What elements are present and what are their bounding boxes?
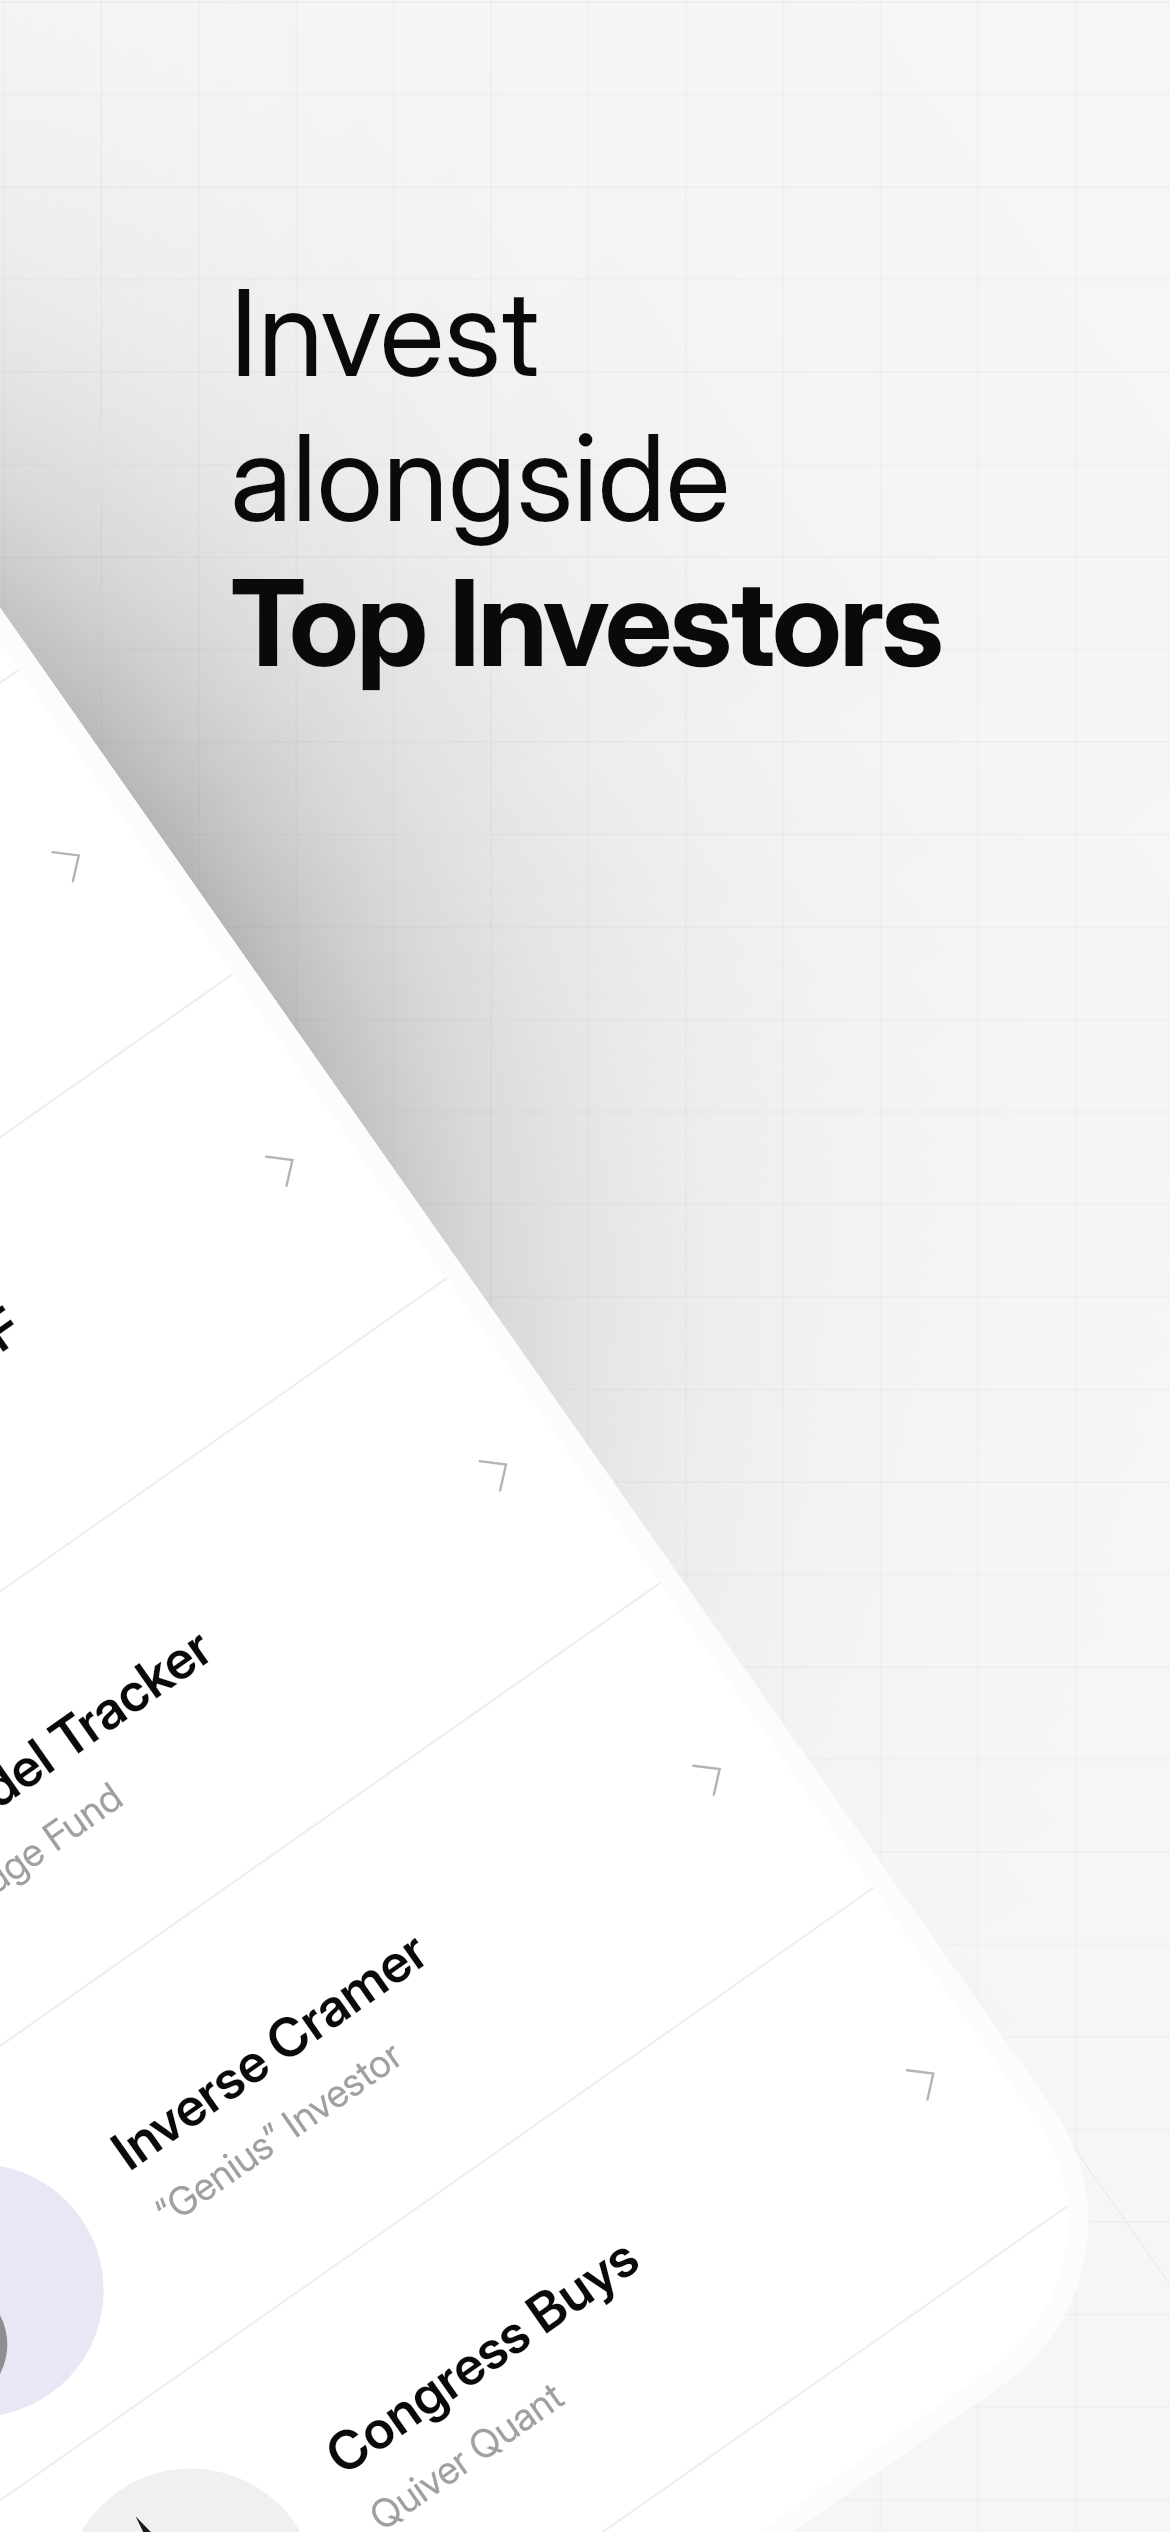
staticText: alongside — [230, 405, 731, 550]
staticText: Hedge Fund — [0, 1772, 131, 1931]
button[interactable]: Nasdaq 100 ETF — [0, 974, 447, 1962]
staticText: Congress Buys — [313, 2223, 651, 2487]
button[interactable]: Congress Buys — [0, 1888, 1088, 2532]
staticText: Quiver Quant — [360, 2371, 572, 2532]
staticText: Nasdaq 100 ETF — [0, 1293, 34, 1574]
other: Open Inverse Cramer — [692, 1753, 731, 1796]
staticText: Invest — [230, 260, 540, 405]
button[interactable]: Cathie Wood — [0, 365, 19, 1353]
staticText: Citadel Tracker — [0, 1614, 224, 1878]
staticText: Inverse Cramer — [99, 1917, 440, 2183]
button[interactable]: Pelosi Tracker — [0, 670, 233, 1658]
button[interactable]: Citadel Tracker — [0, 1279, 660, 2267]
other: Open Pelosi Tracker — [51, 839, 91, 883]
button[interactable]: Inverse Cramer — [0, 1583, 874, 2532]
other: Open Congress Buys — [905, 2057, 945, 2101]
staticText: “Genius” Investor — [146, 2031, 410, 2235]
other: Open Nasdaq 100 ETF — [264, 1144, 304, 1187]
other: Open Citadel Tracker — [478, 1448, 518, 1492]
staticText: Top Investors — [230, 550, 942, 695]
